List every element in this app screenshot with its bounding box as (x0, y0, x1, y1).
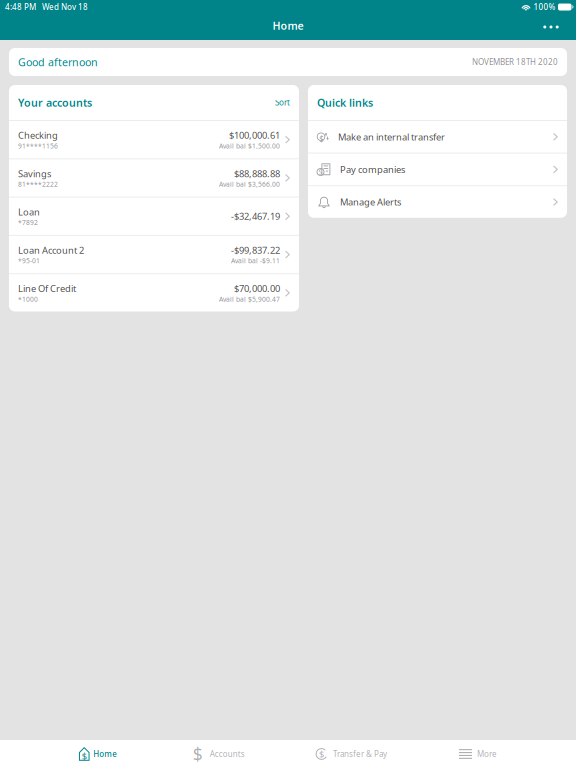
staticText: Wed Nov 18 (42, 2, 88, 12)
staticText: 100% (533, 2, 555, 12)
staticText: Good afternoon (18, 55, 98, 69)
staticText: *7892 (18, 218, 38, 227)
staticText: Avail bal $3,566.00 (219, 180, 280, 189)
button[interactable]: Manage Alerts (308, 186, 567, 218)
button[interactable]: Sort (275, 97, 290, 108)
staticText: S (318, 168, 322, 176)
staticText: 91****1156 (18, 141, 58, 150)
button[interactable]: More (440, 740, 516, 768)
staticText: *1000 (18, 295, 38, 303)
button[interactable]: Checking (9, 121, 299, 158)
staticText: -$99,837.22 (231, 244, 280, 256)
staticText: Home (272, 18, 303, 33)
staticText: $ (319, 748, 324, 760)
staticText: $100,000.61 (229, 129, 280, 141)
staticText: Sort (275, 97, 290, 108)
staticText: $ (193, 742, 203, 765)
staticText: 4:48 PM (5, 2, 36, 12)
button[interactable]: $ (180, 740, 256, 768)
staticText: -$32,467.19 (231, 210, 280, 222)
staticText: Loan Account 2 (18, 244, 84, 256)
button[interactable]: Line Of Credit (9, 274, 299, 311)
staticText: Checking (18, 129, 58, 141)
staticText: Avail bal $5,900.47 (219, 295, 280, 303)
button[interactable]: More options (534, 14, 568, 40)
button[interactable]: $ (60, 740, 136, 768)
staticText: Transfer & Pay (333, 749, 387, 759)
button[interactable]: Loan Account 2 (9, 236, 299, 273)
staticText: $ (82, 750, 87, 762)
staticText: Pay companies (340, 163, 405, 176)
staticText: Line Of Credit (18, 282, 76, 295)
button[interactable]: S (308, 154, 567, 185)
staticText: Quick links (317, 95, 373, 110)
staticText: *95-01 (18, 256, 40, 265)
staticText: NOVEMBER 18TH 2020 (472, 57, 558, 67)
staticText: Home (93, 749, 117, 759)
staticText: $70,000.00 (234, 282, 280, 295)
staticText: Avail bal -$9.11 (231, 256, 280, 265)
staticText: Loan (18, 206, 40, 218)
staticText: Manage Alerts (340, 196, 401, 208)
staticText: Make an internal transfer (338, 131, 445, 143)
staticText: Accounts (210, 749, 245, 759)
staticText: $ (319, 134, 324, 144)
button[interactable]: $ (308, 121, 567, 153)
staticText: Avail bal $1,500.00 (219, 141, 280, 150)
button[interactable]: Loan (9, 198, 299, 235)
staticText: More (477, 749, 497, 759)
staticText: Savings (18, 167, 51, 180)
button[interactable]: Savings (9, 159, 299, 197)
button[interactable]: $ (308, 740, 394, 768)
staticText: $88,888.88 (234, 167, 280, 180)
staticText: 81****2222 (18, 180, 58, 189)
staticText: Your accounts (18, 95, 92, 110)
